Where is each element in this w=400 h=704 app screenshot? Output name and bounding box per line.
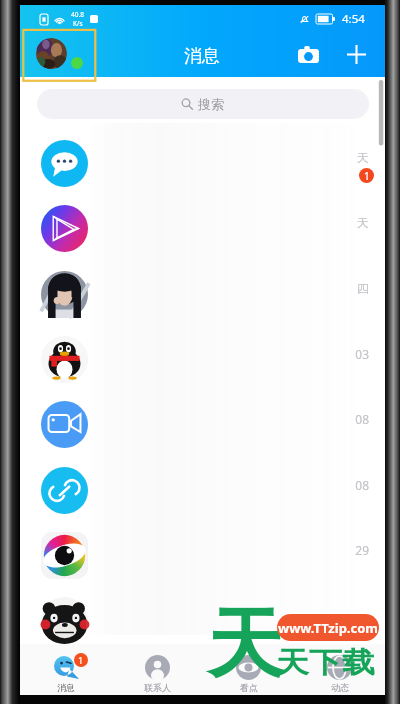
- staticText: 消息: [184, 45, 220, 68]
- staticText: 40.8: [71, 10, 84, 19]
- staticText: 4:54: [342, 11, 365, 27]
- button[interactable]: 08: [20, 392, 385, 457]
- staticText: 08: [319, 477, 369, 493]
- button[interactable]: 天: [20, 131, 385, 196]
- button[interactable]: 29: [20, 523, 385, 588]
- button[interactable]: 03: [20, 327, 385, 392]
- staticText: 天下载: [276, 645, 375, 681]
- button[interactable]: 08: [20, 458, 385, 523]
- button[interactable]: 联系人: [112, 644, 203, 695]
- staticText: 29: [319, 542, 369, 558]
- staticText: www.TTzip.com: [278, 619, 379, 637]
- staticText: 03: [319, 346, 369, 362]
- button[interactable]: Add: [340, 38, 372, 70]
- staticText: 联系人: [144, 682, 171, 693]
- button[interactable]: 看点: [203, 644, 294, 695]
- button[interactable]: 搜索: [37, 89, 369, 119]
- button[interactable]: 四: [20, 262, 385, 327]
- staticText: 动态: [331, 682, 349, 693]
- staticText: 天: [319, 215, 369, 230]
- button[interactable]: 动态: [294, 644, 385, 695]
- staticText: 1: [78, 654, 84, 666]
- staticText: 看点: [240, 682, 258, 693]
- staticText: K/s: [73, 19, 83, 28]
- staticText: 天: [207, 597, 283, 693]
- staticText: 1: [364, 169, 370, 183]
- button[interactable]: 消息: [20, 644, 112, 695]
- staticText: 08: [319, 411, 369, 427]
- staticText: 天: [319, 150, 369, 165]
- staticText: 搜索: [198, 96, 224, 112]
- button[interactable]: 天: [20, 196, 385, 261]
- button[interactable]: [20, 588, 385, 653]
- button[interactable]: Camera: [292, 38, 324, 70]
- staticText: 四: [319, 281, 369, 296]
- button[interactable]: Profile: [36, 38, 67, 69]
- staticText: 消息: [57, 682, 75, 693]
